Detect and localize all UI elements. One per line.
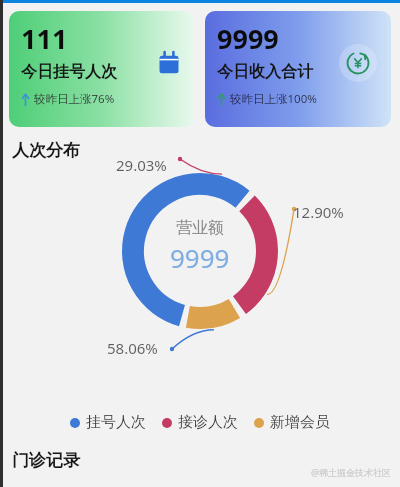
staticText: 12.90% bbox=[293, 202, 344, 222]
staticText: 门诊记录 bbox=[12, 450, 80, 471]
staticText: 新增会员 bbox=[270, 413, 330, 432]
staticText: 9999 bbox=[170, 240, 230, 275]
staticText: 营业额 bbox=[176, 218, 224, 238]
staticText: 今日收入合计 bbox=[217, 62, 313, 82]
staticText: 人次分布 bbox=[12, 140, 80, 161]
staticText: 111 bbox=[21, 20, 68, 57]
button[interactable]: 接诊人次 bbox=[162, 413, 238, 432]
staticText: 挂号人次 bbox=[86, 413, 146, 432]
staticText: 9999 bbox=[217, 20, 279, 57]
other: Calendar bbox=[158, 52, 180, 74]
staticText: 接诊人次 bbox=[178, 413, 238, 432]
staticText: @稀土掘金技术社区 bbox=[311, 466, 392, 478]
other: Income bbox=[346, 51, 370, 75]
staticText: 较昨日上涨76% bbox=[34, 91, 115, 107]
staticText: 29.03% bbox=[116, 155, 167, 175]
button[interactable]: 111 bbox=[9, 11, 194, 127]
staticText: 58.06% bbox=[107, 338, 158, 358]
staticText: 今日挂号人次 bbox=[21, 62, 117, 82]
button[interactable]: 新增会员 bbox=[254, 413, 330, 432]
button[interactable]: 9999 bbox=[205, 11, 391, 127]
button[interactable]: 挂号人次 bbox=[70, 413, 146, 432]
staticText: 较昨日上涨100% bbox=[230, 91, 317, 107]
